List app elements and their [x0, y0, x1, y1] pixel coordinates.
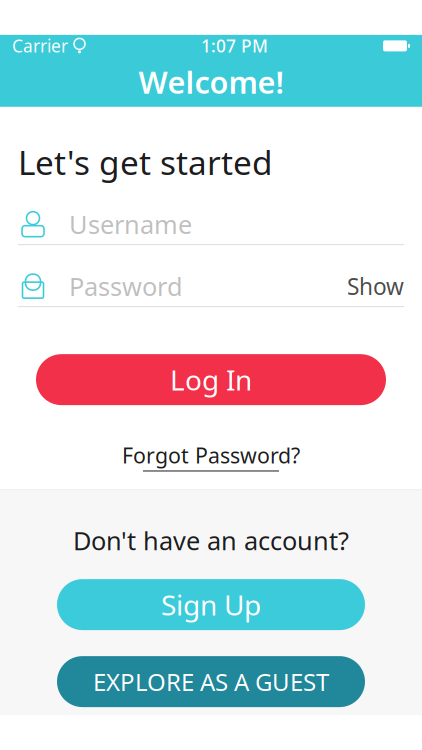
staticText: Let's get started	[18, 140, 273, 184]
button[interactable]: Forgot Password?	[122, 405, 300, 481]
button[interactable]: Sign Up	[57, 579, 365, 630]
button[interactable]: Log In	[36, 354, 386, 405]
staticText: Welcome!	[138, 61, 283, 102]
staticText: 1:07 PM	[201, 34, 268, 57]
staticText: Forgot Password?	[122, 441, 300, 469]
staticText: Username	[69, 207, 192, 241]
button[interactable]: Password	[0, 245, 422, 307]
button[interactable]: EXPLORE AS A GUEST	[57, 656, 365, 707]
staticText: Don't have an account?	[73, 523, 349, 557]
staticText: Sign Up	[161, 586, 261, 623]
staticText: Show	[347, 271, 404, 301]
staticText: Log In	[170, 361, 252, 398]
staticText: EXPLORE AS A GUEST	[93, 666, 329, 698]
staticText: Password	[69, 269, 183, 303]
button[interactable]: Username	[0, 184, 422, 245]
staticText: Carrier	[12, 34, 68, 57]
